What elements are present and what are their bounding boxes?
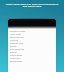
- staticText: Track habits daily and build your moment…: [4, 2, 60, 8]
- staticText: Morning routine: [10, 30, 26, 33]
- button[interactable]: Read 20 pages: [8, 36, 56, 39]
- staticText: Walk outside: [10, 54, 23, 57]
- staticText: Drink water: [10, 33, 21, 36]
- button[interactable]: Review goals: [8, 60, 56, 63]
- button[interactable]: Plan tomorrow: [8, 48, 56, 51]
- staticText: Review goals: [10, 60, 23, 63]
- staticText: Workout: [10, 39, 19, 42]
- staticText: Sleep early: [10, 57, 21, 60]
- button[interactable]: Stretch: [8, 51, 56, 54]
- button[interactable]: Journal: [8, 45, 56, 48]
- button[interactable]: Meditate daily: [8, 42, 56, 45]
- staticText: Journal: [10, 45, 17, 48]
- button[interactable]: Sleep early: [8, 57, 56, 60]
- staticText: Stretch: [10, 51, 17, 54]
- button[interactable]: Walk outside: [8, 54, 56, 57]
- button[interactable]: Workout: [8, 39, 56, 42]
- staticText: Plan tomorrow: [10, 48, 24, 51]
- button[interactable]: App bar: [8, 19, 56, 26]
- button[interactable]: Morning routine: [8, 30, 56, 33]
- staticText: Read 20 pages: [10, 36, 24, 39]
- button[interactable]: Drink water: [8, 33, 56, 36]
- staticText: Meditate daily: [10, 42, 24, 45]
